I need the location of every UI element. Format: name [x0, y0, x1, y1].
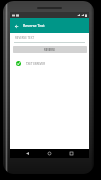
staticText: REVERSE — [44, 48, 56, 52]
button[interactable]: REVERSE — [13, 46, 87, 53]
staticText: TXET ESREVER — [26, 62, 46, 66]
button[interactable]: Home — [45, 149, 54, 158]
staticText: Reverse Text — [23, 23, 45, 28]
button[interactable]: Back — [23, 149, 32, 158]
staticText: REVERSE TEXT — [15, 36, 35, 40]
button[interactable]: Navigate up — [12, 21, 21, 31]
button[interactable]: Recent apps — [67, 149, 76, 158]
